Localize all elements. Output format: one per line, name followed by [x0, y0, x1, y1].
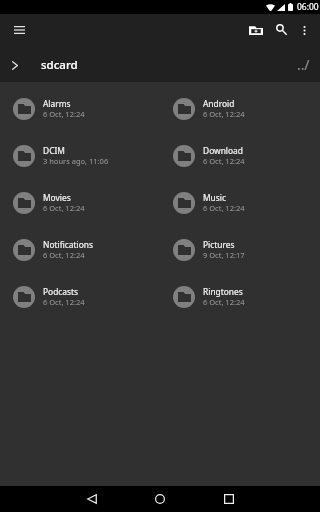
staticText: 6 Oct, 12:24	[203, 109, 245, 119]
staticText: 3 hours ago, 11:06	[43, 156, 109, 166]
staticText: 6 Oct, 12:24	[203, 297, 245, 307]
staticText: Pictures	[203, 239, 235, 250]
staticText: 06:00	[297, 1, 319, 13]
button[interactable]: Recent apps	[206, 486, 251, 512]
staticText: sdcard	[41, 57, 78, 73]
button[interactable]: Download	[160, 132, 320, 179]
button[interactable]: More options	[292, 18, 316, 42]
button[interactable]: Back	[69, 486, 114, 512]
staticText: Music	[203, 192, 227, 203]
staticText: Movies	[43, 192, 71, 203]
staticText: DCIM	[43, 145, 65, 156]
button[interactable]: Android	[160, 85, 320, 132]
staticText: Notifications	[43, 239, 93, 250]
staticText: 6 Oct, 12:24	[43, 250, 85, 260]
button[interactable]: Podcasts	[0, 273, 160, 320]
button[interactable]: Create new folder	[244, 18, 268, 42]
staticText: ../	[297, 56, 310, 74]
staticText: Alarms	[43, 98, 71, 109]
staticText: 6 Oct, 12:24	[203, 203, 245, 213]
staticText: 6 Oct, 12:24	[43, 297, 85, 307]
staticText: 6 Oct, 12:24	[203, 156, 245, 166]
button[interactable]: Alarms	[0, 85, 160, 132]
staticText: Android	[203, 98, 235, 109]
staticText: Ringtones	[203, 286, 243, 297]
staticText: 6 Oct, 12:24	[43, 203, 85, 213]
button[interactable]: Pictures	[160, 226, 320, 273]
button[interactable]: Open navigation drawer	[7, 18, 31, 42]
button[interactable]: Ringtones	[160, 273, 320, 320]
staticText: Download	[203, 145, 243, 156]
staticText: 9 Oct, 12:17	[203, 250, 245, 260]
staticText: Podcasts	[43, 286, 79, 297]
button[interactable]: sdcard	[0, 48, 320, 82]
button[interactable]: Home	[137, 486, 182, 512]
button[interactable]: DCIM	[0, 132, 160, 179]
button[interactable]: Notifications	[0, 226, 160, 273]
staticText: 6 Oct, 12:24	[43, 109, 85, 119]
button[interactable]: Music	[160, 179, 320, 226]
button[interactable]: Movies	[0, 179, 160, 226]
button[interactable]: Search	[269, 17, 293, 41]
